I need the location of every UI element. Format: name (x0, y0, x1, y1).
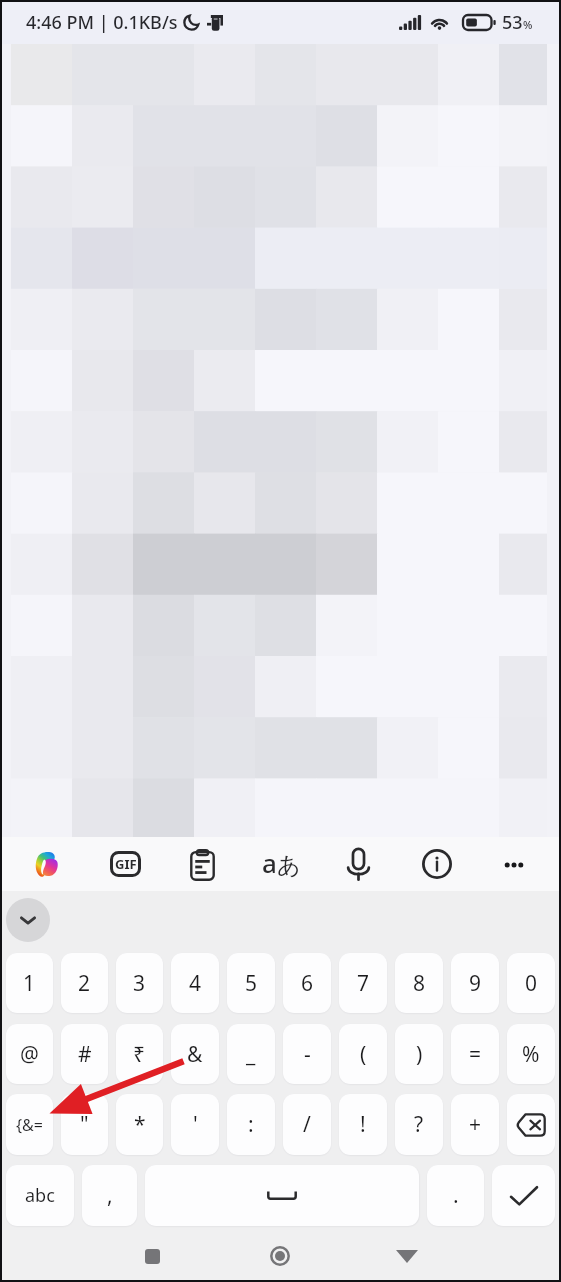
button[interactable]: 1 (6, 953, 53, 1013)
button[interactable]: 9 (451, 953, 499, 1013)
button[interactable]: " (61, 1094, 108, 1155)
button[interactable]: Enter (492, 1165, 555, 1226)
button[interactable]: Copilot (21, 840, 69, 888)
button[interactable]: , (82, 1165, 137, 1226)
button[interactable]: . (427, 1165, 484, 1226)
button[interactable]: GIF (101, 840, 149, 888)
button[interactable]: Collapse toolbar (6, 898, 50, 942)
button[interactable]: Clipboard (178, 840, 226, 888)
staticText: ₹ (133, 1040, 146, 1069)
button[interactable]: ! (339, 1094, 387, 1155)
staticText: あ (277, 851, 301, 880)
staticText: ( (360, 1040, 367, 1069)
staticText: abc (25, 1183, 55, 1208)
button[interactable]: 0 (507, 953, 555, 1013)
staticText: # (78, 1040, 92, 1069)
staticText: - (304, 1040, 311, 1069)
button[interactable]: ( (339, 1024, 387, 1084)
button[interactable]: _ (227, 1024, 275, 1084)
staticText: 3 (133, 969, 146, 998)
staticText: 4:46 PM | 0.1KB/s (26, 10, 178, 35)
button[interactable]: Translate (256, 840, 304, 888)
staticText: a (262, 845, 277, 880)
button[interactable]: 3 (116, 953, 163, 1013)
staticText: " (80, 1110, 89, 1139)
button[interactable]: ) (395, 1024, 443, 1084)
button[interactable]: Hide keyboard (383, 1232, 431, 1280)
staticText: GIF (115, 855, 137, 873)
button[interactable]: 4 (171, 953, 219, 1013)
staticText: 7 (357, 969, 370, 998)
button[interactable]: + (451, 1094, 499, 1155)
staticText: . (453, 1181, 459, 1210)
button[interactable]: Space (145, 1165, 419, 1226)
staticText: ) (416, 1040, 423, 1069)
staticText: % (522, 1040, 540, 1069)
staticText: / (303, 1110, 311, 1139)
button[interactable]: - (283, 1024, 331, 1084)
staticText: 5 (245, 969, 258, 998)
button[interactable]: * (116, 1094, 163, 1155)
button[interactable]: @ (6, 1024, 53, 1084)
button[interactable]: # (61, 1024, 108, 1084)
staticText: % (523, 17, 533, 32)
button[interactable]: & (171, 1024, 219, 1084)
staticText: 8 (413, 969, 426, 998)
button[interactable]: More options (490, 840, 538, 888)
button[interactable]: Backspace (507, 1094, 555, 1155)
staticText: 1 (23, 969, 36, 998)
button[interactable]: 2 (61, 953, 108, 1013)
button[interactable]: ? (395, 1094, 443, 1155)
button[interactable]: ₹ (116, 1024, 163, 1084)
staticText: = (469, 1040, 482, 1069)
staticText: 0 (525, 969, 538, 998)
staticText: ' (193, 1110, 198, 1139)
staticText: * (134, 1110, 146, 1139)
staticText: {&= (16, 1114, 43, 1136)
staticText: 2 (78, 969, 91, 998)
button[interactable]: % (507, 1024, 555, 1084)
button[interactable]: 5 (227, 953, 275, 1013)
staticText: : (248, 1110, 254, 1139)
staticText: & (187, 1040, 203, 1069)
staticText: ? (414, 1110, 424, 1139)
button[interactable]: / (283, 1094, 331, 1155)
button[interactable]: Home (256, 1232, 304, 1280)
button[interactable]: {&= (6, 1094, 53, 1155)
button[interactable]: 6 (283, 953, 331, 1013)
button[interactable]: Voice input (334, 840, 382, 888)
button[interactable]: = (451, 1024, 499, 1084)
staticText: _ (246, 1040, 256, 1069)
staticText: 6 (301, 969, 314, 998)
button[interactable]: : (227, 1094, 275, 1155)
button[interactable]: ' (171, 1094, 219, 1155)
staticText: @ (20, 1040, 39, 1069)
button[interactable]: abc (6, 1165, 74, 1226)
staticText: ! (360, 1110, 366, 1139)
button[interactable]: 7 (339, 953, 387, 1013)
staticText: + (469, 1110, 482, 1139)
button[interactable]: 8 (395, 953, 443, 1013)
staticText: 9 (469, 969, 482, 998)
staticText: 4 (189, 969, 202, 998)
button[interactable]: Info (413, 840, 461, 888)
staticText: 53 (502, 10, 523, 35)
staticText: , (107, 1181, 113, 1210)
button[interactable]: Recent apps (128, 1232, 176, 1280)
